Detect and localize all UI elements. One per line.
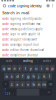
button[interactable]: Menu [1, 3, 8, 9]
button[interactable]: m [42, 81, 47, 88]
button[interactable]: z [9, 81, 14, 88]
button[interactable]: code [0, 47, 56, 52]
button[interactable]: code [0, 32, 56, 37]
staticText: x [16, 82, 18, 87]
staticText: signing certificate mac [10, 22, 40, 26]
button[interactable]: o [44, 65, 49, 72]
staticText: ?123 [4, 89, 10, 96]
staticText: code [2, 27, 10, 31]
button[interactable]: r [17, 65, 22, 72]
button[interactable]: i [39, 65, 44, 72]
staticText: s [11, 74, 13, 79]
staticText: ⏎ [47, 91, 49, 94]
staticText: d [16, 74, 18, 79]
staticText: code [2, 43, 10, 46]
staticText: code [2, 53, 10, 57]
button[interactable]: k [42, 73, 47, 80]
staticText: u [35, 66, 37, 71]
button[interactable]: v [26, 81, 30, 88]
staticText: code [2, 38, 10, 41]
button[interactable]: n [36, 81, 41, 88]
staticText: , [13, 90, 14, 94]
button[interactable]: f [20, 73, 25, 80]
staticText: o [46, 66, 48, 71]
staticText: sign in with apple id [10, 32, 40, 36]
button[interactable]: ?123 [4, 89, 11, 96]
button[interactable]: j [36, 73, 41, 80]
staticText: q [3, 66, 5, 71]
staticText: l [49, 74, 50, 79]
staticText: ↑ [5, 83, 7, 86]
staticText: n [38, 82, 40, 87]
button[interactable]: d [15, 73, 20, 80]
staticText: f [22, 74, 23, 79]
staticText: p [51, 66, 53, 71]
staticText: t [25, 66, 26, 71]
button[interactable]: h [31, 73, 36, 80]
staticText: coverage report tool [10, 43, 39, 46]
button[interactable]: w [7, 65, 12, 72]
staticText: coding [23, 59, 33, 63]
staticText: Search in mail [2, 10, 29, 15]
staticText: code [2, 22, 10, 26]
staticText: code [2, 48, 10, 52]
button[interactable]: More options [51, 3, 55, 9]
staticText: code [2, 17, 10, 20]
button[interactable]: t [23, 65, 28, 72]
staticText: i [41, 66, 42, 71]
staticText: g [27, 74, 29, 79]
staticText: k [43, 74, 45, 79]
staticText: ⌫ [48, 83, 52, 86]
button[interactable]: code [0, 16, 56, 21]
button[interactable]: p [50, 65, 55, 72]
button[interactable]: s [9, 73, 14, 80]
staticText: code signing identity [8, 3, 42, 8]
staticText: e [13, 66, 15, 71]
button[interactable]: u [34, 65, 39, 72]
button[interactable]: q [1, 65, 6, 72]
staticText: editor theme download [10, 48, 44, 52]
staticText: completion shortcut [10, 53, 38, 57]
staticText: w [8, 66, 11, 71]
staticText: code [2, 32, 10, 36]
staticText: y [30, 66, 32, 71]
staticText: b [32, 82, 34, 87]
button[interactable]: y [28, 65, 33, 72]
staticText: v [27, 82, 29, 87]
staticText: m [42, 82, 46, 87]
staticText: snippet library swift [10, 38, 37, 41]
staticText: c [22, 82, 24, 87]
button[interactable]: b [31, 81, 36, 88]
staticText: codes [43, 59, 51, 63]
button[interactable]: e [12, 65, 17, 72]
staticText: . [42, 90, 43, 94]
staticText: code [6, 59, 13, 63]
staticText: z [11, 82, 13, 87]
staticText: signing identity xcode [10, 17, 42, 20]
staticText: a [5, 74, 7, 79]
button[interactable]: code [0, 21, 56, 26]
staticText: h [32, 74, 34, 79]
staticText: j [38, 74, 39, 79]
button[interactable]: Profile [45, 3, 51, 9]
button[interactable]: l [47, 73, 52, 80]
button[interactable]: x [15, 81, 20, 88]
button[interactable]: ⏎ [45, 89, 52, 96]
staticText: review guidelines apple [10, 27, 43, 31]
button[interactable]: , [11, 89, 16, 96]
button[interactable]: code [0, 42, 56, 47]
button[interactable]: ↑ [2, 81, 9, 88]
button[interactable]: g [26, 73, 30, 80]
button[interactable]: code [0, 37, 56, 42]
button[interactable]: ⌫ [47, 81, 54, 88]
button[interactable]: code [0, 26, 56, 32]
button[interactable]: code [0, 52, 56, 58]
button[interactable]: a [4, 73, 9, 80]
staticText: r [19, 66, 21, 71]
button[interactable]: c [20, 81, 25, 88]
